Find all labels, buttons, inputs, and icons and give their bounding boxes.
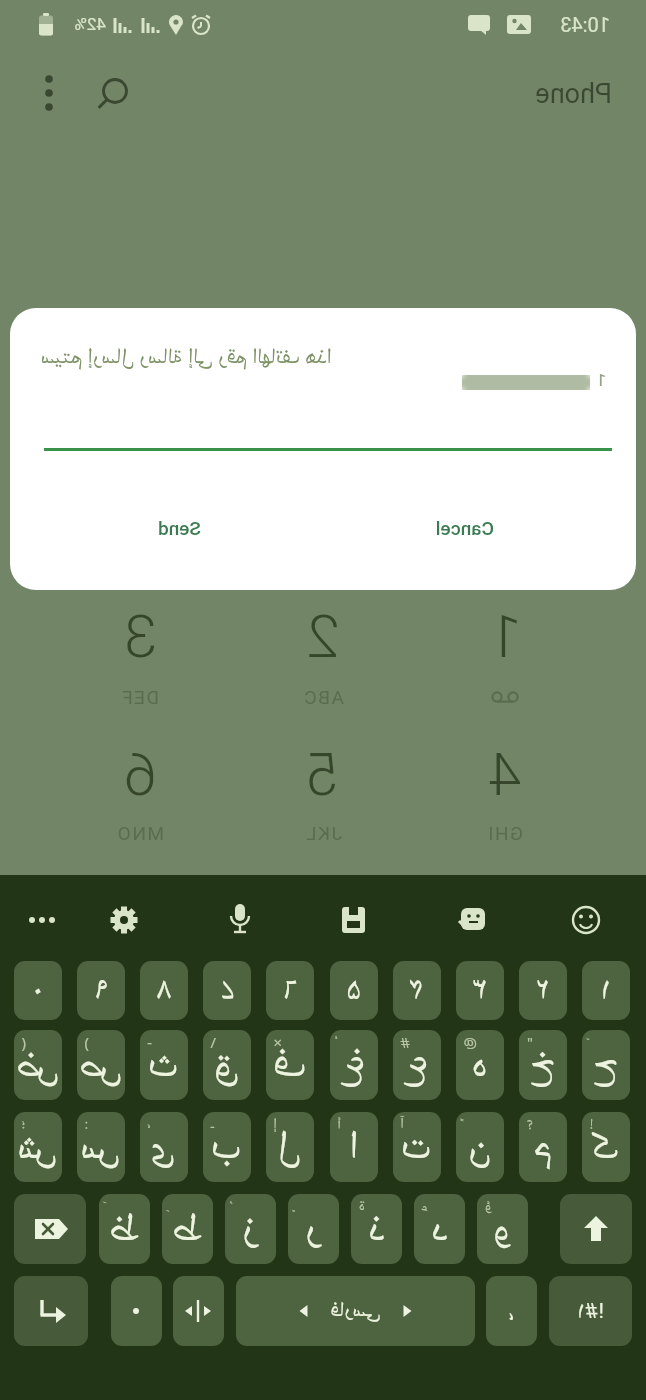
staticText: د [431,1202,448,1256]
button[interactable]: ۷ [203,961,251,1020]
staticText: ۴ [409,969,424,1013]
button[interactable] [173,1276,224,1346]
button[interactable]: إ [266,1112,314,1182]
button[interactable]: ٍ [288,1194,339,1264]
button[interactable] [560,1194,632,1264]
button[interactable]: ً [456,1112,504,1182]
staticText: ٬ [147,1114,150,1134]
staticText: ت [401,1120,432,1174]
button[interactable]: ّ [582,1030,630,1100]
button[interactable]: ( [14,1030,62,1100]
button[interactable]: فارسی [236,1276,475,1346]
button[interactable]: " [519,1030,567,1100]
button[interactable] [243,732,403,862]
staticText: # [400,1032,410,1052]
button[interactable] [442,890,502,950]
staticText: - [147,1032,152,1052]
staticText: ۹ [94,969,108,1013]
button[interactable]: !# [549,1276,632,1346]
button[interactable]: ۸ [140,961,188,1020]
button[interactable]: ۴ [393,961,441,1020]
button[interactable]: ۱ [582,961,630,1020]
button[interactable] [111,1276,162,1346]
staticText: ؤ [484,1196,492,1216]
staticText: ABC [302,686,344,708]
staticText: DEF [120,686,159,708]
staticText: ف [273,1038,307,1092]
button[interactable]: Send [120,505,240,551]
button[interactable]: ؟ [519,1112,567,1182]
button[interactable] [14,1276,88,1346]
staticText: ل [278,1120,302,1174]
button[interactable] [30,70,66,118]
button[interactable]: \ [203,1030,251,1100]
button[interactable]: ٬ [140,1112,188,1182]
button[interactable]: ! [582,1112,630,1182]
button[interactable] [60,594,220,724]
staticText: ص [79,1038,123,1092]
button[interactable]: ۹ [77,961,125,1020]
button[interactable] [209,890,269,950]
button[interactable]: × [266,1030,314,1100]
staticText: " [526,1032,533,1052]
staticText: ه [471,1038,488,1092]
button[interactable]: َ [99,1194,150,1264]
staticText: ا [349,1120,359,1174]
staticText: 1 [596,370,606,390]
staticText: ز [242,1202,258,1256]
staticText: 42% [74,14,106,34]
staticText: GHI [486,822,523,844]
button[interactable]: ۳ [456,961,504,1020]
staticText: ۷ [220,969,234,1013]
staticText: @ [463,1032,477,1052]
staticText: و [493,1202,512,1256]
button[interactable]: ۶ [266,961,314,1020]
button[interactable] [11,890,71,950]
button[interactable]: : [77,1112,125,1182]
button[interactable] [94,890,154,950]
staticText: 4 [488,739,522,809]
button[interactable]: ۰ [14,961,62,1020]
staticText: ق [214,1038,240,1092]
button[interactable] [556,890,616,950]
staticText: س [80,1120,121,1174]
button[interactable] [60,732,220,862]
button[interactable] [425,594,585,724]
staticText: ( [21,1032,26,1052]
staticText: Send [158,517,201,539]
button[interactable] [243,594,403,724]
button[interactable] [14,1194,86,1264]
button[interactable]: - [140,1030,188,1100]
staticText: ؟ [526,1114,533,1134]
staticText: ۸ [157,969,171,1013]
button[interactable]: أ [330,1112,378,1182]
staticText: ۰ [32,969,43,1013]
button[interactable]: Cancel [405,505,525,551]
button[interactable]: ُ [225,1194,276,1264]
button[interactable]: ) [77,1030,125,1100]
button[interactable]: آ [393,1112,441,1182]
button[interactable]: ۲ [519,961,567,1020]
staticText: JKL [304,822,342,844]
button[interactable]: ة [351,1194,402,1264]
button[interactable]: ۵ [330,961,378,1020]
button[interactable] [88,70,134,116]
staticText: ـ [210,1114,214,1134]
button[interactable]: ٔ [330,1030,378,1100]
button[interactable]: ء [414,1194,465,1264]
button[interactable] [323,890,383,950]
button[interactable]: ِ [162,1194,213,1264]
button[interactable]: ، [486,1276,537,1346]
staticText: ط [172,1202,203,1256]
button[interactable]: ؤ [477,1194,528,1264]
button[interactable] [425,732,585,862]
button[interactable]: ؛ [14,1112,62,1182]
staticText: م [533,1120,553,1174]
staticText: ش [17,1120,58,1174]
staticText: ۵ [346,969,361,1013]
button[interactable]: # [393,1030,441,1100]
button[interactable]: @ [456,1030,504,1100]
button[interactable]: ـ [203,1112,251,1182]
staticText: ۶ [282,969,297,1013]
staticText: ۱ [600,969,611,1013]
